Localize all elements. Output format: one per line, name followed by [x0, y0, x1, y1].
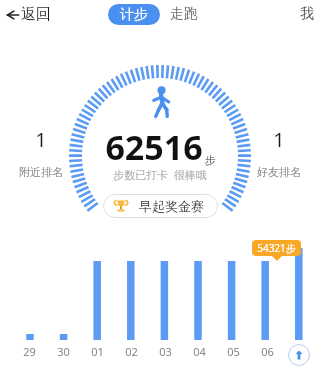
staticText: 1: [273, 126, 285, 153]
staticText: 05: [227, 344, 240, 359]
staticText: 03: [159, 344, 172, 359]
staticText: 计步: [120, 6, 148, 24]
staticText: 29: [23, 344, 36, 359]
staticText: 01: [91, 344, 104, 359]
staticText: 步数已打卡 很棒哦: [113, 167, 207, 182]
staticText: 附近排名: [19, 165, 63, 179]
button[interactable]: 计步: [108, 4, 160, 25]
staticText: 早起奖金赛: [139, 198, 204, 214]
button[interactable]: 返回: [0, 3, 57, 26]
button[interactable]: 1: [244, 126, 314, 179]
staticText: 返回: [21, 5, 51, 24]
staticText: 步: [205, 153, 216, 167]
button[interactable]: Share: [288, 344, 310, 366]
button[interactable]: 我: [294, 3, 320, 25]
staticText: 1: [35, 126, 47, 153]
staticText: 走跑: [170, 5, 198, 23]
staticText: 好友排名: [257, 165, 301, 179]
staticText: 30: [57, 344, 70, 359]
staticText: 我: [300, 5, 314, 23]
staticText: 06: [261, 344, 274, 359]
button[interactable]: 1: [6, 126, 76, 179]
staticText: 54321步: [257, 241, 296, 255]
staticText: 62516: [105, 124, 203, 170]
staticText: 07: [289, 344, 302, 359]
staticText: 04: [193, 344, 206, 359]
button[interactable]: 走跑: [160, 3, 208, 25]
button[interactable]: 早起奖金赛: [103, 194, 218, 218]
staticText: 02: [125, 344, 138, 359]
